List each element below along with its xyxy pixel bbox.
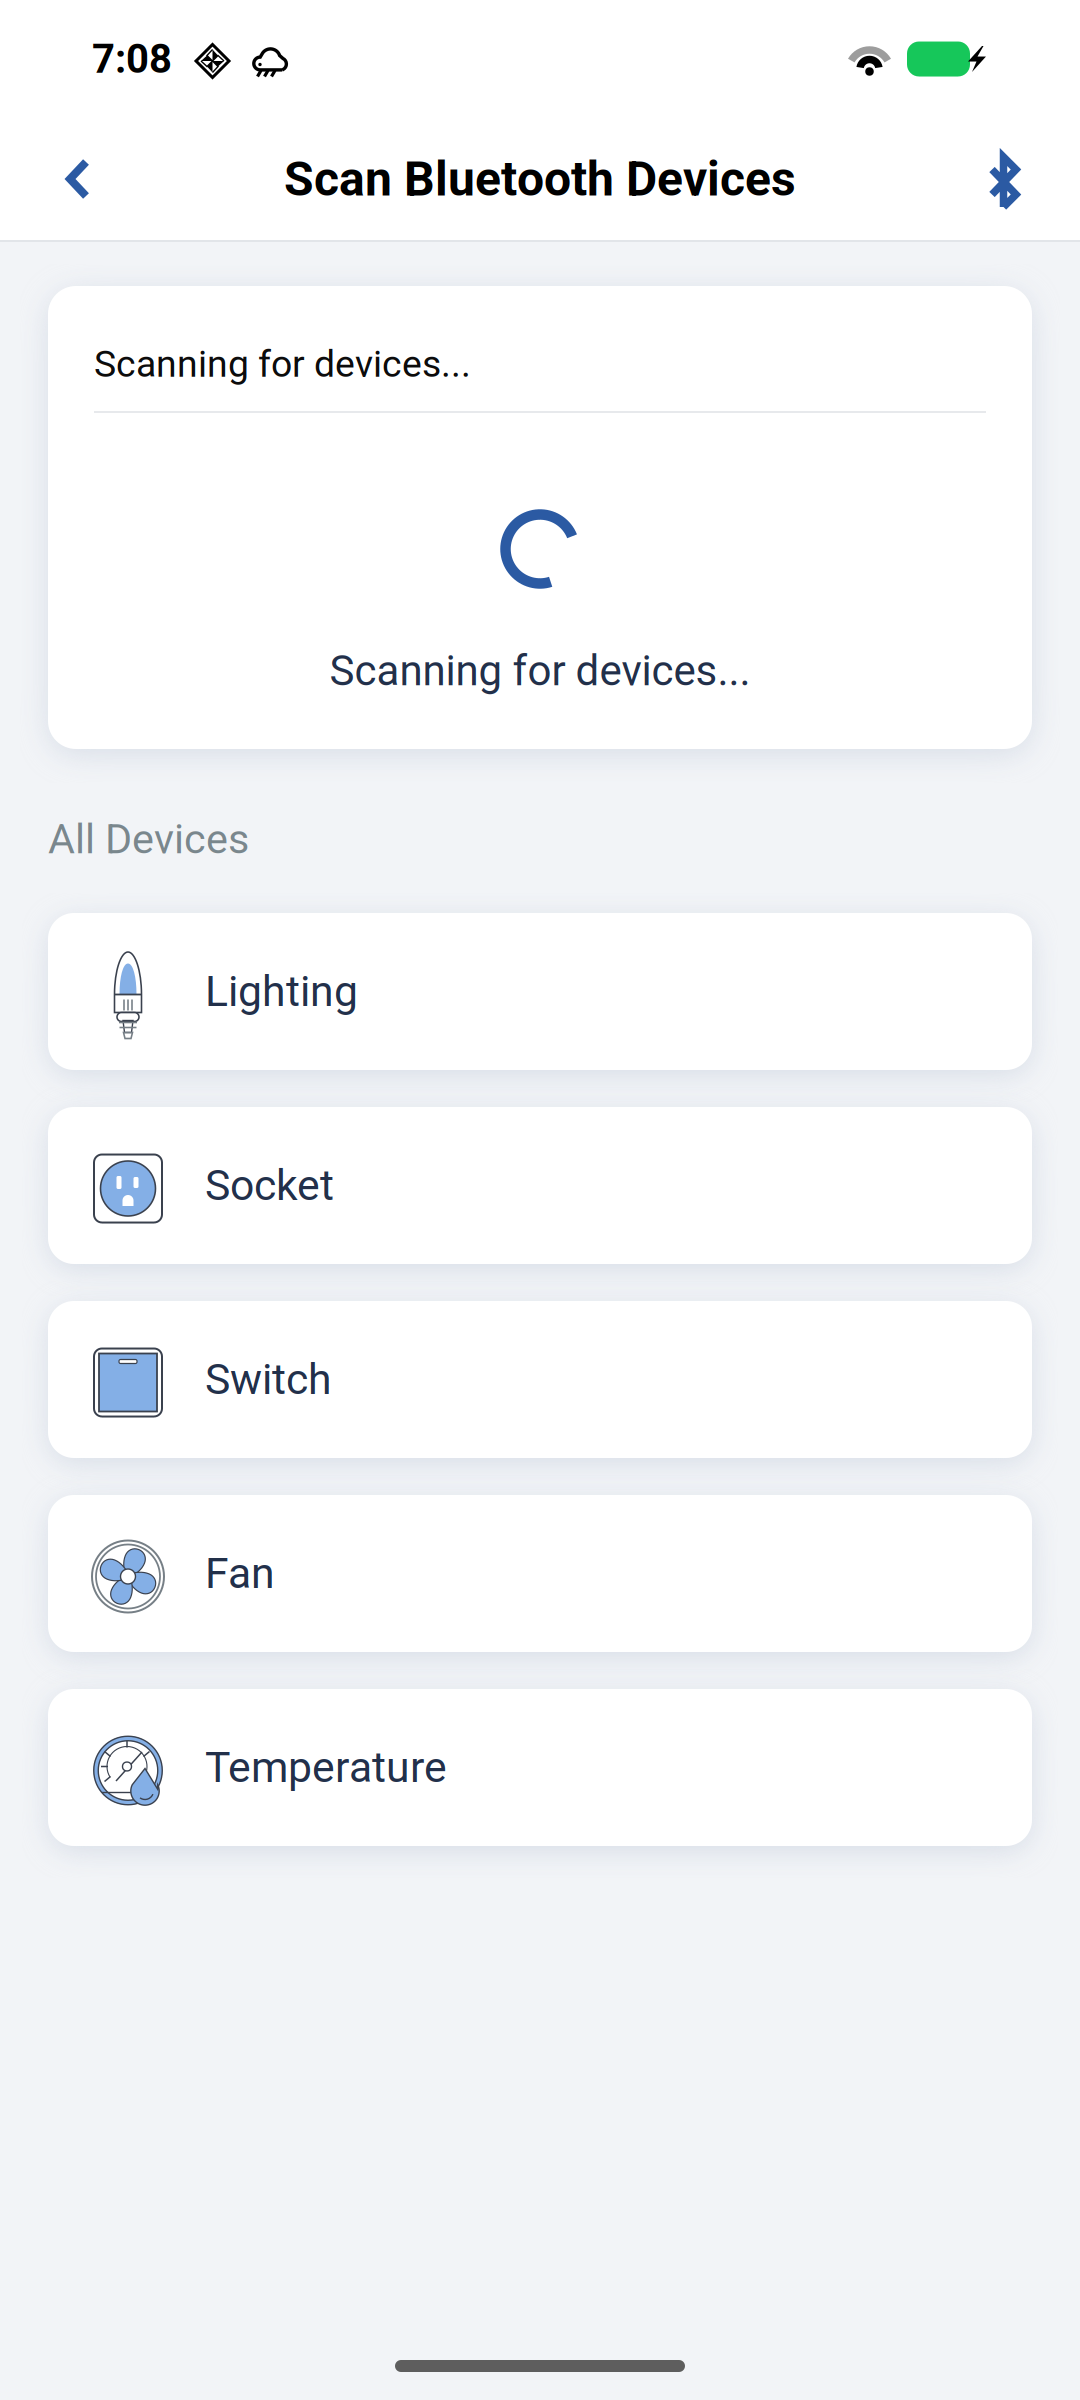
staticText: All Devices: [48, 815, 249, 863]
staticText: Scanning for devices...: [329, 646, 750, 696]
staticText: Fan: [205, 1548, 275, 1598]
button[interactable]: Fan: [48, 1495, 1032, 1652]
button[interactable]: Lighting: [48, 913, 1032, 1070]
staticText: Lighting: [205, 966, 358, 1016]
staticText: Scanning for devices...: [94, 342, 471, 386]
staticText: 7:08: [92, 36, 172, 82]
button[interactable]: Switch: [48, 1301, 1032, 1458]
staticText: Socket: [205, 1160, 334, 1210]
button[interactable]: Bluetooth: [962, 126, 1046, 232]
button[interactable]: Socket: [48, 1107, 1032, 1264]
staticText: Scan Bluetooth Devices: [284, 151, 796, 207]
button[interactable]: Back: [38, 130, 118, 228]
staticText: Switch: [205, 1354, 332, 1404]
staticText: Temperature: [205, 1742, 447, 1792]
button[interactable]: Temperature: [48, 1689, 1032, 1846]
